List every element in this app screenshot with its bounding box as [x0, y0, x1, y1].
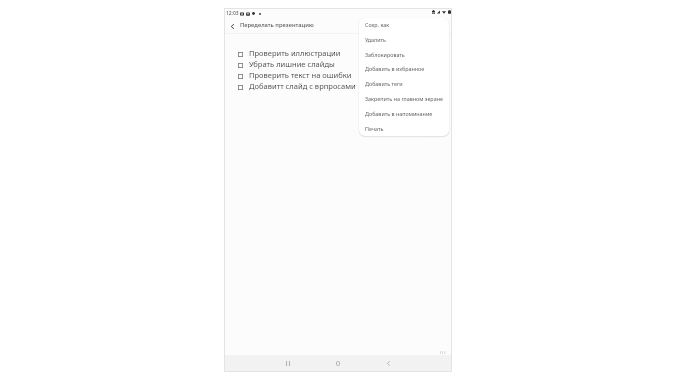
button[interactable]: Заблокировать — [359, 51, 449, 66]
staticText: Добавить в напоминание — [365, 110, 433, 117]
staticText: 12:03 — [226, 10, 239, 17]
button[interactable]: Проверить текст на ошибки — [224, 69, 452, 80]
staticText: Сохр. как — [365, 21, 390, 28]
staticText: Добавить теги — [365, 80, 403, 87]
button[interactable]: Home — [331, 358, 345, 369]
staticText: Закрепить на главном экране — [365, 95, 443, 102]
staticText: Проверить текст на ошибки — [249, 70, 352, 80]
staticText: Добавить в избранное — [365, 65, 425, 72]
button[interactable]: Закрепить на главном экране — [359, 95, 449, 110]
staticText: Убрать лишние слайды — [249, 59, 335, 69]
button[interactable]: Back — [381, 358, 395, 369]
staticText: Заблокировать — [365, 51, 405, 58]
staticText: Переделать презентацию — [240, 21, 314, 29]
button[interactable]: Добавить в избранное — [359, 65, 449, 80]
button[interactable]: Добавитт слайд с врпросами — [224, 80, 452, 91]
staticText: Добавитт слайд с врпросами — [249, 81, 356, 91]
button[interactable]: Проверить иллюстрации — [224, 47, 452, 58]
staticText: Проверить иллюстрации — [249, 48, 341, 58]
staticText: Печать — [365, 125, 384, 132]
button[interactable]: Добавить теги — [359, 80, 449, 95]
button[interactable]: Убрать лишние слайды — [224, 58, 452, 69]
button[interactable]: Recent apps — [281, 358, 295, 369]
button[interactable]: Печать — [359, 125, 449, 136]
button[interactable]: Удалить — [359, 36, 449, 51]
button[interactable]: Back — [226, 20, 238, 32]
button[interactable]: Сохр. как — [359, 21, 449, 36]
button[interactable]: Добавить в напоминание — [359, 110, 449, 125]
staticText: Удалить — [365, 36, 387, 43]
